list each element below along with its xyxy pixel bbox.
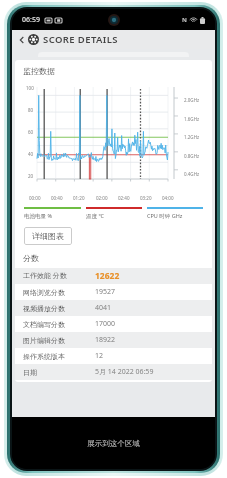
button[interactable]: 操作系统版本 — [15, 348, 212, 364]
button[interactable]: 工作效能 分数 — [15, 268, 212, 284]
staticText: 详细图表 — [32, 231, 64, 241]
button[interactable]: 视频播放分数 — [15, 300, 212, 316]
button[interactable]: 详细图表 — [24, 227, 72, 245]
staticText: 06:59 — [22, 15, 40, 25]
button[interactable]: 图片编辑分数 — [15, 332, 212, 348]
button[interactable]: 日期 — [15, 364, 212, 380]
staticText: 03:20 — [140, 195, 152, 201]
staticText: CPU 时钟 GHz — [147, 212, 203, 220]
staticText: 01:20 — [73, 195, 85, 201]
button[interactable]: 展示到这个区域 — [12, 417, 215, 469]
staticText: 100 — [26, 85, 34, 91]
staticText: 12 — [95, 351, 104, 361]
button[interactable]: Back — [16, 34, 28, 46]
staticText: 00:40 — [51, 195, 63, 201]
staticText: 温度 ℃ — [86, 212, 142, 220]
staticText: 17000 — [95, 319, 116, 329]
staticText: 文档编写分数 — [23, 320, 95, 329]
staticText: 20 — [28, 173, 34, 179]
staticText: 视频播放分数 — [23, 304, 95, 313]
staticText: 40 — [28, 151, 34, 157]
staticText: 19527 — [95, 287, 116, 297]
staticText: 02:40 — [118, 195, 130, 201]
staticText: 0.8GHz — [184, 153, 200, 159]
staticText: 1.2GHz — [184, 134, 200, 140]
staticText: 监控数据 — [23, 66, 55, 76]
staticText: 2.0GHz — [184, 97, 200, 103]
staticText: 1.6GHz — [184, 116, 200, 122]
staticText: 18922 — [95, 335, 116, 345]
staticText: 操作系统版本 — [23, 352, 95, 361]
staticText: 80 — [28, 107, 34, 113]
staticText: N — [182, 16, 187, 24]
staticText: 4041 — [95, 303, 112, 313]
staticText: 电池电量 % — [24, 212, 81, 220]
staticText: 60 — [28, 129, 34, 135]
staticText: SCORE DETAILS — [43, 33, 118, 46]
staticText: 展示到这个区域 — [87, 439, 140, 448]
staticText: 12622 — [95, 270, 120, 282]
button[interactable]: 文档编写分数 — [15, 316, 212, 332]
staticText: 分数 — [23, 253, 39, 263]
staticText: 日期 — [23, 368, 95, 377]
staticText: 图片编辑分数 — [23, 336, 95, 345]
staticText: 工作效能 分数 — [23, 271, 95, 281]
button[interactable]: 网络浏览分数 — [15, 284, 212, 300]
staticText: 5月 14 2022 06:59 — [95, 367, 154, 377]
staticText: 网络浏览分数 — [23, 288, 95, 297]
staticText: 02:00 — [96, 195, 108, 201]
staticText: 0.4GHz — [184, 171, 200, 177]
staticText: 00:00 — [29, 195, 41, 201]
staticText: 04:00 — [162, 195, 174, 201]
